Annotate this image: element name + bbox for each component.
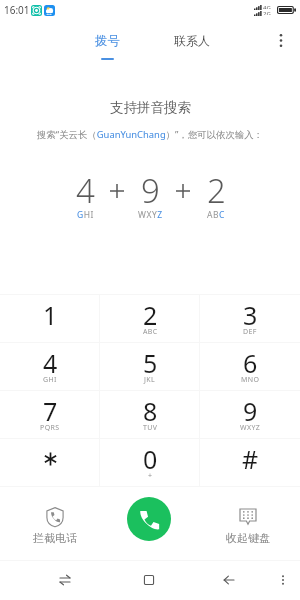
staticText: 2G: [263, 10, 271, 15]
button[interactable]: Back: [215, 566, 243, 594]
staticText: 16:01: [4, 3, 30, 17]
staticText: #: [242, 442, 259, 476]
staticText: 拦截电话: [33, 531, 77, 545]
staticText: 搜索“关云长（GuanYunChang）”，您可以依次输入：: [37, 128, 263, 141]
staticText: DEF: [243, 327, 257, 337]
button[interactable]: 6: [200, 343, 300, 390]
button[interactable]: 8: [100, 391, 200, 438]
staticText: 拨号: [95, 33, 120, 49]
button[interactable]: 0: [100, 439, 200, 486]
staticText: 3: [243, 298, 258, 332]
staticText: TUV: [143, 423, 158, 433]
staticText: 收起键盘: [226, 531, 270, 545]
staticText: 2: [143, 298, 158, 332]
button[interactable]: 拨号: [86, 30, 128, 62]
button[interactable]: 2: [100, 295, 200, 342]
button[interactable]: Switch: [51, 566, 79, 594]
staticText: 2: [207, 168, 226, 213]
staticText: 7: [43, 394, 58, 428]
staticText: +: [148, 471, 153, 481]
button[interactable]: 收起键盘: [222, 507, 274, 545]
button[interactable]: #: [200, 439, 300, 486]
button[interactable]: 1: [0, 295, 100, 342]
staticText: MNO: [241, 375, 260, 385]
button[interactable]: 7: [0, 391, 100, 438]
staticText: 9: [141, 168, 160, 213]
staticText: 4G: [263, 4, 271, 9]
staticText: 联系人: [174, 33, 210, 48]
staticText: 0: [143, 442, 158, 476]
staticText: WXYZ: [138, 209, 163, 221]
button[interactable]: [0, 439, 100, 486]
button[interactable]: Home: [135, 566, 163, 594]
button[interactable]: 5: [100, 343, 200, 390]
staticText: 6: [243, 346, 258, 380]
button[interactable]: 4: [0, 343, 100, 390]
staticText: JKL: [144, 375, 156, 385]
button[interactable]: 9: [200, 391, 300, 438]
button[interactable]: Call: [127, 497, 171, 541]
staticText: PQRS: [40, 423, 60, 433]
button[interactable]: 拦截电话: [29, 507, 81, 545]
button[interactable]: 联系人: [168, 30, 216, 54]
button[interactable]: Menu: [269, 566, 297, 594]
staticText: ABC: [143, 327, 158, 337]
staticText: 4: [76, 168, 95, 213]
staticText: 支持拼音搜索: [110, 99, 191, 116]
staticText: WXYZ: [240, 423, 261, 433]
staticText: 9: [243, 394, 258, 428]
staticText: 1: [43, 298, 58, 332]
button[interactable]: More options: [266, 27, 295, 53]
staticText: 5: [143, 346, 158, 380]
button[interactable]: 3: [200, 295, 300, 342]
staticText: GHI: [77, 209, 94, 221]
staticText: 8: [143, 394, 158, 428]
staticText: GHI: [43, 375, 57, 385]
staticText: 4: [43, 346, 58, 380]
staticText: ABC: [207, 209, 225, 221]
